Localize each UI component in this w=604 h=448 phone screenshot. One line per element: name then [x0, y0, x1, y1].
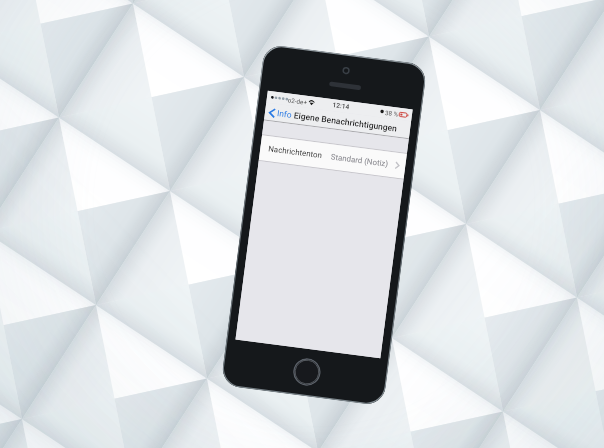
- staticText: o2-de+: [287, 96, 308, 106]
- button[interactable]: Home: [291, 356, 323, 388]
- staticText: Info: [276, 108, 293, 120]
- staticText: Standard (Notiz): [330, 152, 389, 169]
- button[interactable]: Nachrichtenton: [259, 135, 407, 179]
- staticText: Nachrichtenton: [268, 144, 322, 160]
- staticText: 12:14: [332, 101, 350, 111]
- staticText: 38 %: [385, 109, 399, 118]
- button[interactable]: Info: [264, 106, 294, 120]
- staticText: Eigene Benachrichtigungen: [293, 110, 398, 133]
